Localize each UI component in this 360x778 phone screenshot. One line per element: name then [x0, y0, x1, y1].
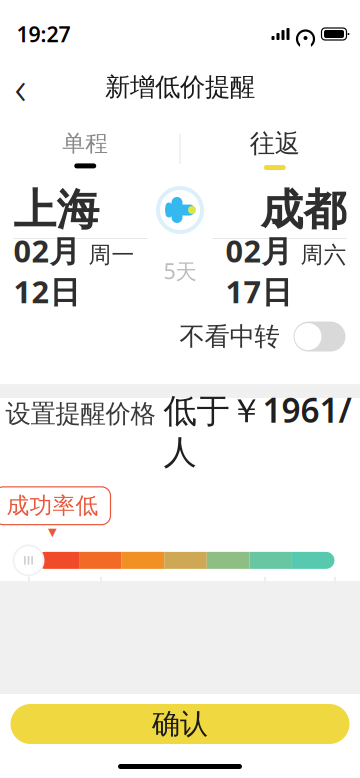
staticText: 02月12日 — [13, 230, 80, 312]
button[interactable]: 上海 — [13, 183, 147, 237]
staticText: 成功率低 — [6, 492, 98, 520]
staticText: 19:27 — [16, 20, 70, 48]
staticText: 往返 — [250, 128, 300, 159]
button[interactable]: 02月12日 — [13, 249, 163, 293]
staticText: 单程 — [62, 130, 108, 157]
staticText: 确认 — [152, 707, 208, 741]
staticText: 设置提醒价格 — [5, 398, 155, 429]
staticText: ‹ — [14, 57, 26, 117]
staticText: 周六 — [300, 241, 346, 269]
staticText: 周一 — [88, 241, 134, 269]
button[interactable]: 不看中转 — [179, 315, 345, 358]
button[interactable]: 单程 — [0, 130, 180, 168]
staticText: 02月17日 — [225, 230, 292, 312]
button[interactable]: 交换出发地与目的地 — [152, 182, 208, 238]
staticText: 新增低价提醒 — [105, 71, 255, 102]
button[interactable]: 确认 — [10, 704, 349, 744]
staticText: 5天 — [163, 257, 196, 285]
staticText: 上海 — [13, 184, 99, 236]
staticText: 低于￥1961/人 — [163, 388, 351, 473]
button[interactable]: 返回 — [0, 65, 42, 109]
staticText: ▾ — [48, 522, 57, 541]
staticText: 成都 — [260, 184, 346, 236]
staticText: 不看中转 — [179, 321, 279, 352]
button[interactable]: 02月17日 — [196, 249, 346, 293]
button[interactable]: 成都 — [212, 183, 346, 237]
button[interactable]: 往返 — [180, 128, 360, 170]
